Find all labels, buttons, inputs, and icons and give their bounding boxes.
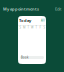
staticText: My appointments: [3, 6, 39, 12]
staticText: All: [41, 19, 45, 22]
staticText: W: [31, 26, 33, 29]
staticText: Edit: [55, 6, 61, 12]
button[interactable]: All: [41, 19, 45, 22]
staticText: Book: [21, 56, 28, 59]
button[interactable]: Book: [20, 56, 44, 59]
staticText: Today: [19, 18, 31, 23]
staticText: M: [23, 26, 25, 29]
